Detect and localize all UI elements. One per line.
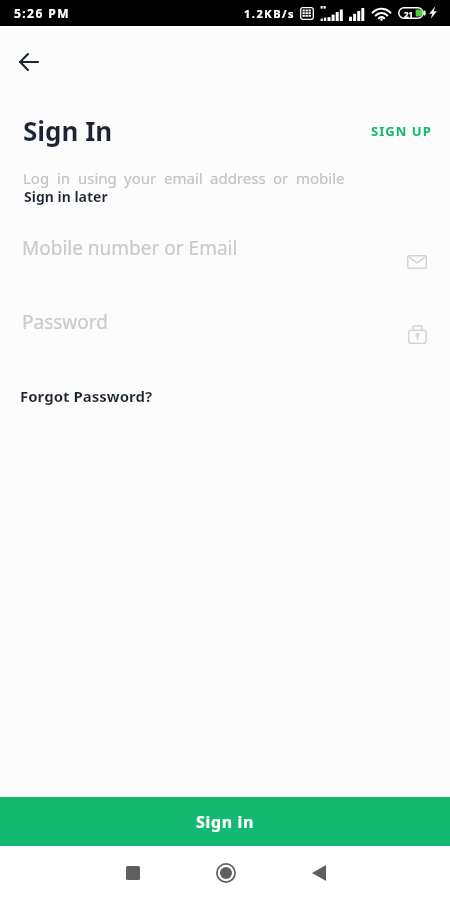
staticText: 5:26 PM (14, 5, 70, 21)
button[interactable]: Sign in (0, 797, 450, 846)
staticText: Sign in (196, 811, 254, 833)
staticText: Sign in later (24, 187, 108, 206)
button[interactable]: Back (272, 846, 365, 900)
staticText: address (210, 168, 266, 188)
staticText: mobile (296, 168, 345, 188)
button[interactable]: Back (10, 43, 47, 80)
staticText: Forgot Password? (20, 386, 153, 406)
staticText: using (78, 168, 117, 188)
button[interactable]: SIGN UP (362, 115, 440, 147)
button[interactable]: Forgot Password? (12, 380, 160, 412)
staticText: or (273, 168, 289, 188)
staticText: email (164, 168, 203, 188)
staticText: in (57, 168, 71, 188)
staticText: your (124, 168, 157, 188)
staticText: Mobile number or Email (22, 235, 238, 261)
staticText: 21 (404, 9, 414, 20)
staticText: Log (23, 168, 50, 188)
button[interactable]: Home (179, 846, 272, 900)
staticText: Sign In (23, 113, 113, 148)
button[interactable]: Recent apps (86, 846, 179, 900)
button[interactable]: Sign in later (16, 183, 116, 209)
staticText: Password (22, 309, 108, 335)
button[interactable]: Mobile number or Email (0, 228, 450, 286)
button[interactable]: Password (0, 302, 450, 360)
staticText: SIGN UP (371, 122, 432, 140)
staticText: 1.2KB/s (244, 6, 296, 21)
